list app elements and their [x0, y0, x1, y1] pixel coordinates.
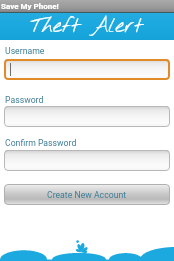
- staticText: Confirm Password: [5, 138, 77, 148]
- staticText: Save My Phone!: [1, 2, 59, 11]
- staticText: Password: [5, 95, 44, 105]
- button[interactable]: Create New Account: [4, 184, 170, 205]
- button[interactable]: [4, 59, 170, 80]
- staticText: Theft Alert: [30, 12, 144, 39]
- button[interactable]: [4, 150, 170, 171]
- staticText: Create New Account: [47, 190, 127, 200]
- button[interactable]: [4, 106, 170, 127]
- staticText: Username: [5, 46, 45, 56]
